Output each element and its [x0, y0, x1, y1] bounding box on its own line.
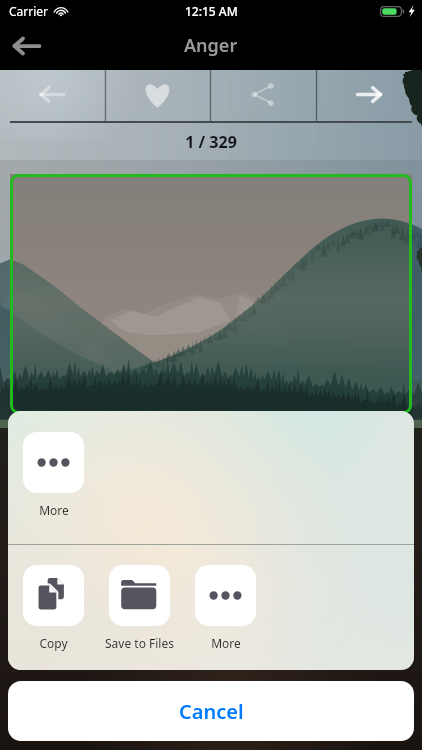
staticText: Save to Files	[105, 635, 174, 651]
button[interactable]: More	[23, 432, 84, 518]
button[interactable]: Cancel	[8, 681, 414, 741]
staticText: Carrier	[9, 3, 49, 19]
button[interactable]: Next	[316, 70, 422, 121]
button[interactable]: Favorite	[105, 70, 210, 121]
button[interactable]: More	[195, 565, 256, 651]
staticText: Anger	[184, 33, 238, 58]
button[interactable]: Previous	[0, 70, 105, 121]
button[interactable]: Copy	[23, 565, 84, 651]
staticText: 1 / 329	[0, 131, 422, 153]
button[interactable]: Share	[210, 70, 316, 121]
staticText: Copy	[39, 635, 68, 651]
staticText: More	[211, 635, 241, 651]
staticText: More	[39, 502, 69, 518]
button[interactable]: Back	[4, 23, 50, 69]
staticText: Cancel	[179, 698, 244, 725]
button[interactable]: Save to Files	[105, 565, 174, 651]
staticText: 12:15 AM	[185, 3, 238, 19]
